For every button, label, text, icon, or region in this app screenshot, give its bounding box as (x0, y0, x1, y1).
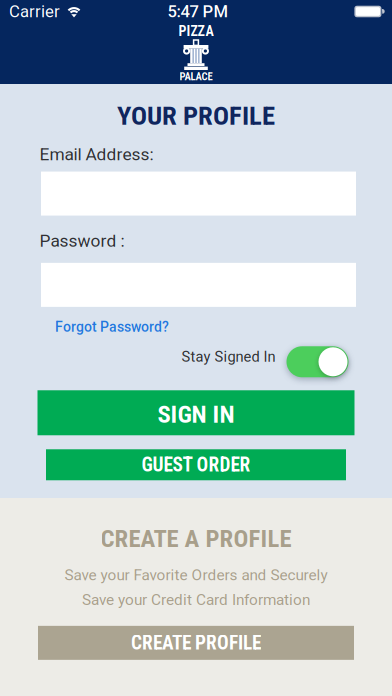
staticText: Save your Favorite Orders and Securely (64, 566, 327, 584)
staticText: Stay Signed In (181, 348, 275, 365)
staticText: CREATE A PROFILE (100, 524, 291, 553)
staticText: CREATE PROFILE (131, 631, 261, 654)
button[interactable]: Stay Signed In (286, 346, 348, 377)
staticText: SIGN IN (157, 400, 234, 429)
staticText: Email Address: (39, 144, 153, 165)
staticText: 5:47 PM (167, 2, 228, 21)
staticText: Forgot Password? (55, 319, 169, 335)
staticText: PALACE (179, 70, 212, 83)
staticText: YOUR PROFILE (117, 100, 275, 131)
staticText: Carrier (9, 2, 60, 21)
button[interactable]: Forgot Password? (55, 319, 169, 335)
staticText: GUEST ORDER (141, 453, 250, 476)
staticText: PIZZA (178, 23, 213, 39)
button[interactable]: CREATE PROFILE (38, 626, 354, 660)
button[interactable]: SIGN IN (37, 390, 354, 435)
button[interactable]: GUEST ORDER (46, 449, 346, 480)
staticText: Password : (39, 231, 124, 251)
staticText: Save your Credit Card Information (82, 591, 310, 609)
